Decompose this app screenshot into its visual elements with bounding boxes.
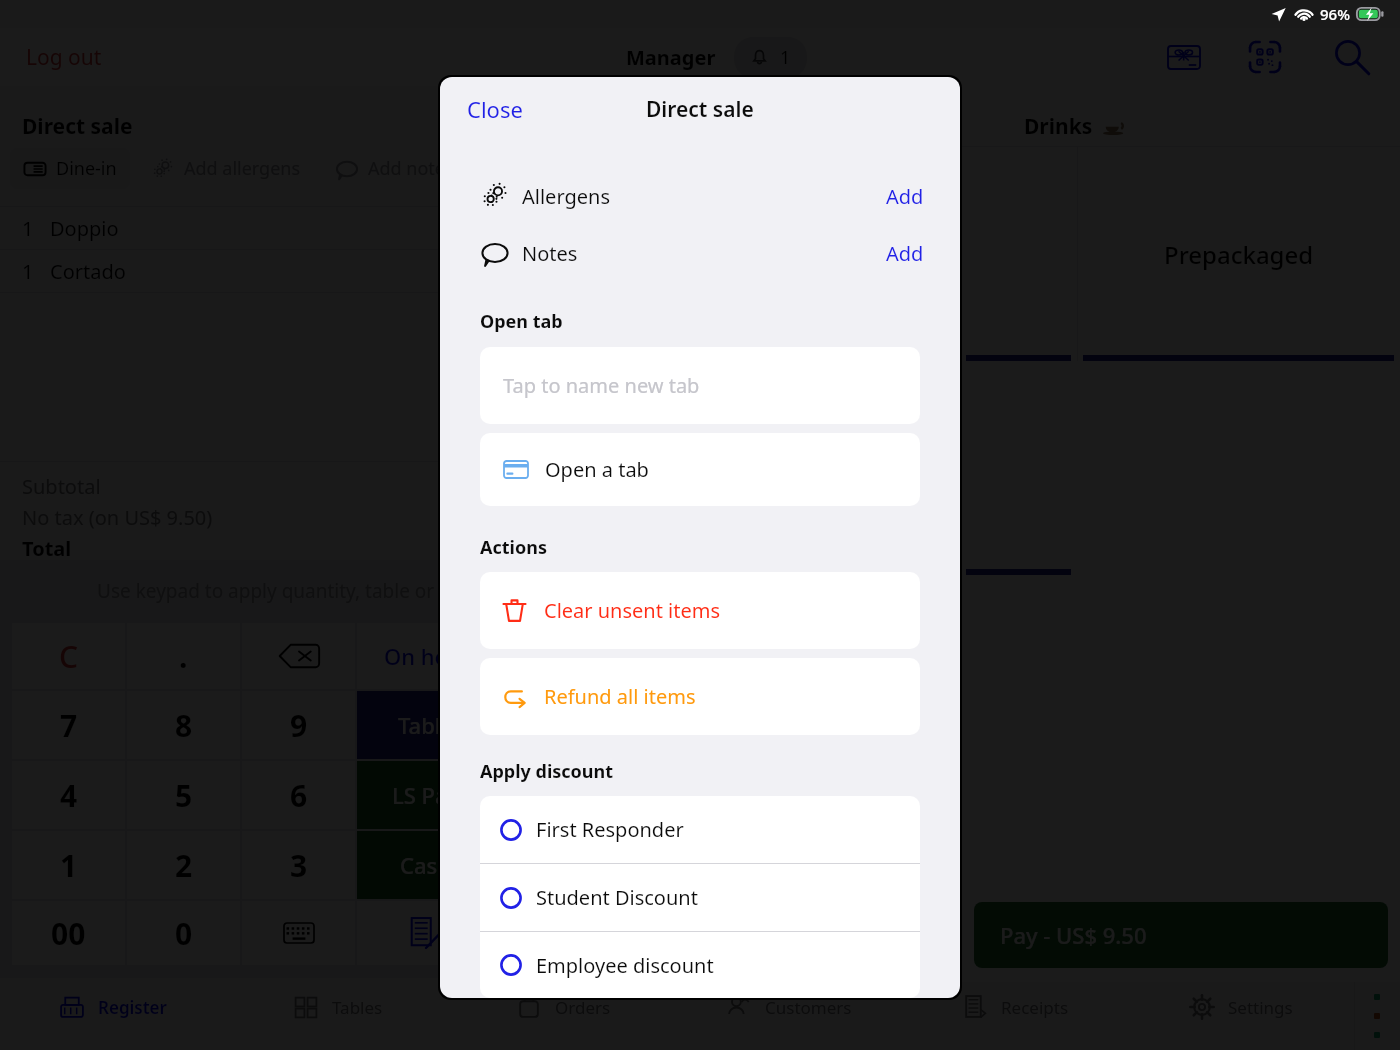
button[interactable]: Clear unsent items [480, 572, 920, 649]
button[interactable]: 1 [12, 831, 125, 899]
button[interactable]: LS Pay [357, 761, 495, 829]
button[interactable]: 4 [12, 761, 125, 829]
staticText: Customers [765, 996, 852, 1019]
button[interactable]: 0 [127, 901, 240, 965]
button[interactable]: Add notes [322, 148, 467, 189]
staticText: Open tab [480, 309, 563, 334]
button[interactable]: Keyboard [242, 901, 355, 965]
staticText: Receipts [1001, 996, 1069, 1019]
button[interactable]: Refund all items [480, 658, 920, 735]
staticText: Cortado [50, 258, 126, 285]
staticText: Settings [1228, 996, 1293, 1019]
button[interactable]: 5 [127, 761, 240, 829]
staticText: On hold [384, 641, 468, 671]
staticText: 1 [22, 215, 34, 242]
button[interactable]: Notes [357, 901, 495, 965]
staticText: 1 [60, 845, 78, 886]
staticText: 1 [780, 45, 791, 70]
button[interactable]: Dine-in [10, 148, 130, 189]
staticText: Close [467, 94, 523, 124]
button[interactable]: Student Discount [480, 864, 920, 931]
button[interactable]: Tables [225, 982, 450, 1032]
button[interactable]: Search [1328, 33, 1376, 81]
staticText: Direct sale [646, 95, 754, 124]
staticText: Pay - US$ 9.50 [1000, 920, 1147, 950]
button[interactable]: 00 [12, 901, 125, 965]
button[interactable]: 6 [242, 761, 355, 829]
button[interactable]: 1 [0, 250, 960, 292]
staticText: LS Pay [392, 780, 460, 810]
button[interactable]: 7 [12, 691, 125, 759]
button[interactable]: Backspace [242, 623, 355, 689]
staticText: 3 [290, 845, 308, 886]
staticText: No tax (on US$ 9.50) [22, 504, 213, 531]
staticText: 96% [1320, 4, 1350, 24]
staticText: 5 [175, 775, 193, 816]
staticText: 2 [175, 845, 193, 886]
button[interactable]: Notifications [734, 37, 807, 78]
button[interactable]: Prepackaged [1077, 147, 1400, 361]
staticText: Actions [480, 535, 547, 560]
button[interactable]: On hold [357, 623, 495, 689]
button[interactable]: Scan code [1242, 34, 1288, 80]
staticText: 8 [175, 705, 193, 746]
button[interactable]: 2 [127, 831, 240, 899]
button[interactable]: Notes [440, 236, 960, 270]
button[interactable]: Open a tab [480, 433, 920, 506]
button[interactable] [960, 147, 1077, 361]
staticText: Open a tab [545, 456, 649, 483]
staticText: 0 [175, 913, 193, 954]
staticText: Register [98, 996, 167, 1019]
button[interactable]: Log out [14, 35, 118, 80]
other: Notifications [750, 48, 769, 67]
staticText: Drinks [1024, 112, 1093, 141]
staticText: Add [886, 183, 924, 210]
staticText: Direct sale [22, 112, 133, 141]
button[interactable]: Customers [676, 982, 902, 1032]
staticText: 6 [290, 775, 308, 816]
staticText: Table [398, 710, 454, 740]
button[interactable]: Tap to name new tab [480, 347, 920, 424]
staticText: Orders [555, 996, 611, 1019]
button[interactable]: Table [357, 691, 495, 759]
button[interactable] [960, 361, 1077, 575]
staticText: Tables [332, 996, 383, 1019]
button[interactable]: Orders [450, 982, 676, 1032]
button[interactable]: 1 [0, 207, 960, 249]
button[interactable]: Pay - US$ 9.50 [974, 902, 1388, 968]
staticText: 4 [60, 775, 78, 816]
button[interactable]: Close [456, 86, 537, 132]
button[interactable]: Register [0, 982, 225, 1032]
staticText: First Responder [536, 816, 684, 843]
staticText: US$ 0.00 [856, 504, 938, 531]
button[interactable]: 3 [242, 831, 355, 899]
button[interactable]: First Responder [480, 796, 920, 863]
staticText: Add [886, 240, 924, 267]
staticText: 4.50 [898, 258, 938, 285]
button[interactable]: Gift card [1162, 35, 1206, 79]
button[interactable]: 9 [242, 691, 355, 759]
staticText: Cash [400, 850, 452, 880]
button[interactable]: Allergens [440, 179, 960, 213]
staticText: Employee discount [536, 952, 714, 979]
staticText: Notes [522, 240, 578, 267]
other: Backspace [278, 642, 320, 670]
staticText: Tap to name new tab [503, 372, 700, 399]
staticText: Refund all items [544, 683, 696, 710]
other: Keyboard [283, 922, 315, 944]
staticText: Manager [626, 44, 716, 71]
staticText: Total [22, 535, 72, 562]
button[interactable]: 8 [127, 691, 240, 759]
staticText: Apply discount [480, 759, 614, 784]
staticText: Prepackaged [1164, 238, 1314, 271]
button[interactable]: Cash [357, 831, 495, 899]
button[interactable]: Employee discount [480, 932, 920, 998]
staticText: Student Discount [536, 884, 698, 911]
button[interactable]: Receipts [902, 982, 1128, 1032]
